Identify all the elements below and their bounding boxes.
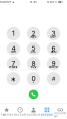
staticText: 2 xyxy=(31,29,35,37)
staticText: 3 xyxy=(52,29,56,37)
button[interactable]: 7 xyxy=(7,57,20,70)
button[interactable]: Call xyxy=(29,90,38,99)
staticText: Recents xyxy=(14,113,26,116)
staticText: GHI xyxy=(11,50,16,53)
staticText: Favorites xyxy=(1,113,13,116)
staticText: 9:41 xyxy=(30,0,36,3)
staticText: Carrier xyxy=(1,0,11,3)
staticText: 7 xyxy=(11,60,15,67)
staticText: 5 xyxy=(31,44,35,52)
button[interactable]: ∗ xyxy=(7,72,20,85)
button[interactable]: 9 xyxy=(47,57,60,70)
staticText: WXYZ xyxy=(49,65,58,68)
staticText: JKL xyxy=(30,50,36,53)
staticText: TUV xyxy=(30,65,36,68)
staticText: 8 xyxy=(31,60,35,67)
staticText: 0 xyxy=(31,75,35,83)
button[interactable]: Keypad xyxy=(40,104,54,119)
staticText: ∗ xyxy=(10,75,16,83)
staticText: 4 xyxy=(11,44,15,52)
staticText: MNO xyxy=(51,50,57,53)
staticText: + xyxy=(32,80,34,84)
button[interactable]: 1 xyxy=(7,27,20,40)
staticText: Voicemail xyxy=(54,112,66,118)
staticText: 9 xyxy=(52,60,56,67)
button[interactable]: 2 xyxy=(27,27,40,40)
button[interactable]: 0 xyxy=(27,72,40,85)
button[interactable]: Favorites xyxy=(0,104,13,119)
staticText: 6 xyxy=(52,44,56,52)
staticText: 100% xyxy=(50,0,58,3)
button[interactable]: 5 xyxy=(27,42,40,55)
button[interactable]: 8 xyxy=(27,57,40,70)
staticText: DEF xyxy=(51,35,57,38)
staticText: PQRS xyxy=(9,65,17,68)
staticText: Keypad xyxy=(41,113,53,116)
staticText: 1 xyxy=(12,29,15,37)
button[interactable]: Contacts xyxy=(27,104,40,119)
button[interactable]: 3 xyxy=(47,27,60,40)
button[interactable]: Recents xyxy=(13,104,27,119)
button[interactable]: 6 xyxy=(47,42,60,55)
button[interactable]: 4 xyxy=(7,42,20,55)
staticText: # xyxy=(52,76,55,82)
staticText: Contacts xyxy=(27,113,40,116)
staticText: ABC xyxy=(30,35,36,38)
button[interactable]: # xyxy=(47,72,60,85)
button[interactable]: Voicemail xyxy=(54,104,67,119)
